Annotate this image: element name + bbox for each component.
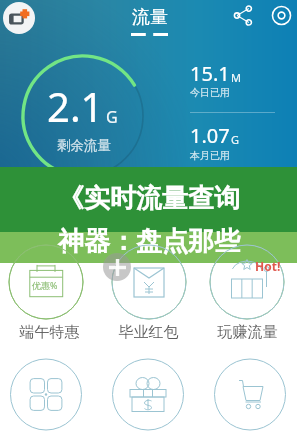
button[interactable]: Add xyxy=(3,2,35,34)
button[interactable]: Gifts xyxy=(99,358,198,430)
staticText: 2.1 xyxy=(47,79,104,133)
staticText: M xyxy=(231,70,241,85)
staticText: 剩余流量 xyxy=(57,137,111,154)
staticText: 15.1 xyxy=(190,60,230,87)
staticText: Hot! xyxy=(255,258,281,274)
button[interactable]: 毕业红包 xyxy=(99,245,198,339)
staticText: G xyxy=(231,132,240,147)
staticText: 优惠% xyxy=(32,279,58,291)
button[interactable]: Share xyxy=(228,1,257,30)
button[interactable]: Play xyxy=(103,253,131,281)
staticText: 《实时流量查询 xyxy=(58,182,240,215)
button[interactable]: Settings xyxy=(267,1,296,30)
staticText: 端午特惠 xyxy=(0,323,99,339)
staticText: 今日已用 xyxy=(190,86,230,99)
button[interactable]: 玩赚流量 xyxy=(198,245,297,339)
staticText: 1.07 xyxy=(190,122,230,149)
button[interactable]: 端午特惠 xyxy=(0,245,99,339)
staticText: 本月已用 xyxy=(190,149,230,162)
staticText: G xyxy=(106,106,118,128)
button[interactable]: Shop xyxy=(198,358,297,430)
staticText: 神器：盘点那些 xyxy=(58,225,240,258)
button[interactable]: 流量 xyxy=(127,6,171,36)
staticText: 流量 xyxy=(132,6,168,29)
staticText: 毕业红包 xyxy=(99,323,198,339)
staticText: 玩赚流量 xyxy=(198,323,297,339)
button[interactable]: Apps xyxy=(0,358,99,430)
